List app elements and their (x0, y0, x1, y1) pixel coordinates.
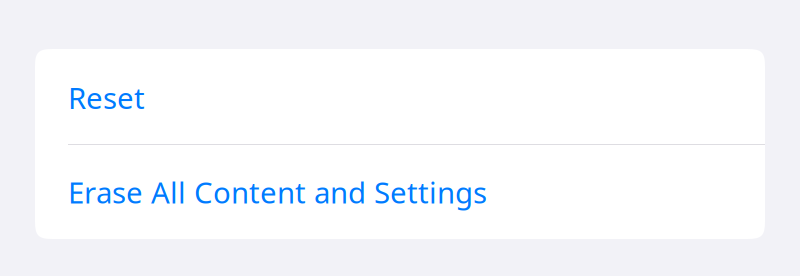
button[interactable]: Erase All Content and Settings (35, 145, 765, 239)
staticText: Reset (68, 78, 145, 117)
button[interactable]: Reset (35, 49, 765, 144)
staticText: Erase All Content and Settings (68, 172, 487, 211)
